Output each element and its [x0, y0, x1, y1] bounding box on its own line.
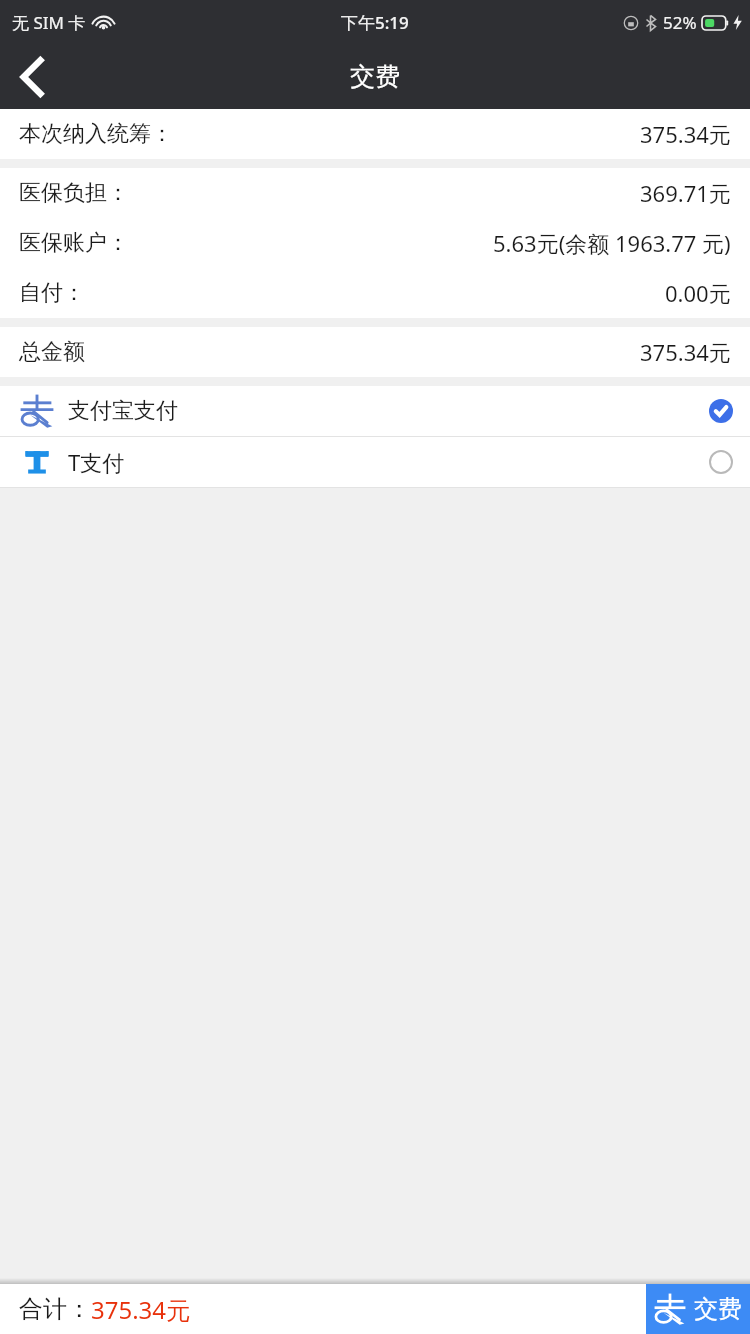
- staticText: 自付：: [19, 279, 85, 307]
- staticText: 医保负担：: [19, 179, 129, 207]
- button[interactable]: 本次纳入统筹：: [0, 109, 750, 159]
- staticText: 医保账户：: [19, 229, 129, 257]
- button[interactable]: 总金额: [0, 327, 750, 377]
- staticText: 375.34元: [640, 119, 731, 149]
- button[interactable]: 交费: [646, 1284, 750, 1334]
- button[interactable]: T支付: [0, 437, 750, 487]
- button[interactable]: 医保负担：: [0, 168, 750, 218]
- staticText: 0.00元: [665, 278, 731, 308]
- staticText: 5.63元(余额 1963.77 元): [493, 228, 731, 258]
- staticText: 本次纳入统筹：: [19, 120, 173, 148]
- staticText: 合计：: [19, 1294, 91, 1324]
- staticText: 369.71元: [640, 178, 731, 208]
- staticText: 375.34元: [91, 1293, 191, 1326]
- button[interactable]: 支付宝支付: [0, 386, 750, 436]
- staticText: 支付宝支付: [68, 397, 178, 425]
- staticText: T支付: [68, 447, 125, 477]
- button[interactable]: 合计：: [0, 1284, 646, 1334]
- staticText: 52%: [663, 11, 697, 34]
- staticText: 交费: [694, 1294, 742, 1324]
- staticText: 375.34元: [640, 337, 731, 367]
- staticText: 无 SIM 卡: [12, 11, 86, 34]
- staticText: 下午5:19: [341, 11, 409, 34]
- button[interactable]: 医保账户：: [0, 218, 750, 268]
- staticText: 交费: [350, 61, 400, 92]
- button[interactable]: 自付：: [0, 268, 750, 318]
- staticText: 总金额: [19, 338, 85, 366]
- button[interactable]: 返回: [0, 45, 64, 109]
